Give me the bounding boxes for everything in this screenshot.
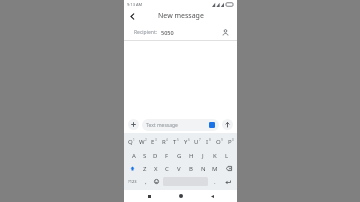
button[interactable]: Add attachment xyxy=(128,119,139,130)
button[interactable]: Emoji xyxy=(151,175,162,188)
staticText: O xyxy=(216,138,221,146)
button[interactable]: ?123 xyxy=(125,175,140,188)
button[interactable]: Recents xyxy=(143,190,155,202)
staticText: , xyxy=(145,178,147,186)
staticText: C xyxy=(165,165,169,173)
staticText: Z xyxy=(143,165,147,173)
staticText: 4 xyxy=(166,138,168,142)
button[interactable]: E xyxy=(148,135,159,149)
button[interactable]: X xyxy=(150,162,161,175)
button[interactable]: Z xyxy=(139,162,150,175)
staticText: 6 xyxy=(188,138,190,142)
button[interactable]: Send xyxy=(222,119,233,130)
staticText: H xyxy=(189,152,194,160)
staticText: New message xyxy=(158,11,204,21)
button[interactable]: K xyxy=(209,149,221,162)
staticText: Text message xyxy=(146,122,178,129)
button[interactable]: T xyxy=(170,135,181,149)
button[interactable]: Text message xyxy=(142,119,219,131)
button[interactable]: Home xyxy=(175,190,187,202)
button[interactable]: Shift xyxy=(125,162,139,175)
staticText: F xyxy=(165,152,169,160)
staticText: D xyxy=(153,152,158,160)
staticText: Q xyxy=(128,138,133,146)
staticText: V xyxy=(177,165,181,173)
staticText: P xyxy=(228,138,232,146)
button[interactable]: Emoji xyxy=(209,122,215,128)
staticText: R xyxy=(162,138,166,146)
staticText: 9:13 AM xyxy=(127,2,143,7)
staticText: Recipient: xyxy=(134,29,158,36)
staticText: E xyxy=(151,138,155,146)
button[interactable]: J xyxy=(197,149,209,162)
staticText: 5050 xyxy=(161,29,174,36)
button[interactable]: P xyxy=(225,135,236,149)
staticText: 5 xyxy=(177,138,179,142)
button[interactable]: M xyxy=(209,162,221,175)
button[interactable]: , xyxy=(140,175,151,188)
staticText: ?123 xyxy=(128,179,137,184)
button[interactable]: Add contact xyxy=(219,26,231,38)
button[interactable]: C xyxy=(161,162,173,175)
staticText: 7 xyxy=(199,138,201,142)
button[interactable]: S xyxy=(139,149,150,162)
staticText: Y xyxy=(184,138,188,146)
staticText: T xyxy=(173,138,177,146)
staticText: 0 xyxy=(232,138,234,142)
staticText: 9 xyxy=(221,138,223,142)
button[interactable]: O xyxy=(214,135,225,149)
button[interactable]: F xyxy=(161,149,173,162)
button[interactable]: B xyxy=(185,162,197,175)
staticText: S xyxy=(143,152,147,160)
staticText: B xyxy=(189,165,193,173)
staticText: N xyxy=(201,165,206,173)
button[interactable]: U xyxy=(192,135,203,149)
button[interactable]: V xyxy=(173,162,185,175)
button[interactable]: Q xyxy=(125,135,137,149)
button[interactable]: I xyxy=(203,135,214,149)
staticText: A xyxy=(132,152,136,160)
button[interactable]: Back xyxy=(124,8,140,24)
staticText: G xyxy=(177,152,182,160)
staticText: J xyxy=(202,152,204,160)
button[interactable]: W xyxy=(137,135,148,149)
button[interactable]: . xyxy=(209,175,220,188)
button[interactable]: Back xyxy=(206,190,218,202)
staticText: I xyxy=(206,138,209,146)
staticText: K xyxy=(213,152,217,160)
button[interactable]: D xyxy=(150,149,161,162)
staticText: U xyxy=(194,138,199,146)
button[interactable]: Enter xyxy=(220,175,236,188)
button[interactable]: L xyxy=(221,149,233,162)
staticText: L xyxy=(225,152,229,160)
staticText: . xyxy=(214,178,216,186)
staticText: M xyxy=(212,165,218,173)
staticText: 3 xyxy=(155,138,157,142)
staticText: 1 xyxy=(133,138,135,142)
staticText: 2 xyxy=(145,138,147,142)
button[interactable]: G xyxy=(173,149,185,162)
staticText: W xyxy=(139,138,145,146)
button[interactable]: Recipient: xyxy=(124,24,237,40)
button[interactable]: Y xyxy=(181,135,192,149)
button[interactable]: Backspace xyxy=(221,162,236,175)
button[interactable]: R xyxy=(159,135,170,149)
button[interactable]: N xyxy=(197,162,209,175)
button[interactable]: A xyxy=(128,149,139,162)
button[interactable]: H xyxy=(185,149,197,162)
staticText: 8 xyxy=(209,138,211,142)
staticText: X xyxy=(154,165,158,173)
